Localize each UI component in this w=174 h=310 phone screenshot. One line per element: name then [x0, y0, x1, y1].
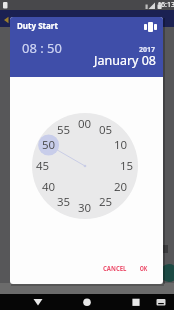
staticText: OK — [140, 263, 147, 272]
staticText: 10 — [114, 137, 128, 153]
staticText: 40 — [42, 179, 56, 195]
staticText: 20 — [114, 179, 128, 195]
staticText: 2017 — [139, 45, 156, 55]
button[interactable]: 2017 — [74, 41, 156, 71]
button[interactable]: OK — [132, 259, 155, 276]
button[interactable] — [141, 19, 159, 35]
button[interactable] — [128, 295, 144, 309]
staticText: 25 — [99, 194, 113, 210]
staticText: 15 — [120, 158, 134, 174]
button[interactable]: 08 : 50 — [21, 39, 63, 55]
staticText: 45 — [36, 158, 50, 174]
staticText: CANCEL — [103, 263, 127, 272]
button[interactable] — [154, 295, 168, 309]
staticText: 08 : 50 — [22, 39, 62, 55]
staticText: 55 — [57, 122, 71, 138]
button[interactable]: CANCEL — [92, 259, 137, 276]
staticText: Duty Start — [17, 20, 58, 31]
staticText: 35 — [57, 194, 71, 210]
staticText: 05 — [99, 122, 113, 138]
button[interactable] — [79, 295, 95, 309]
button[interactable] — [30, 295, 46, 309]
staticText: 30 — [78, 200, 92, 216]
staticText: 50 — [42, 137, 56, 153]
staticText: 6:13 — [161, 0, 174, 10]
staticText: 00 — [78, 116, 92, 132]
staticText: January 08 — [94, 52, 156, 69]
